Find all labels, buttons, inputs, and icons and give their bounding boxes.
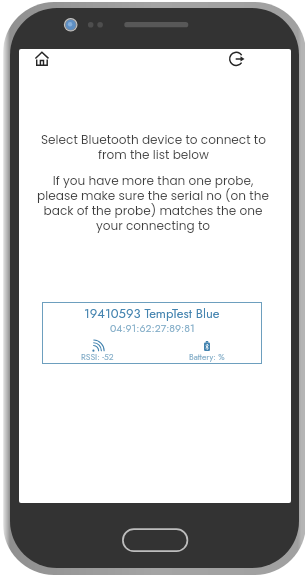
staticText: 19410593 TempTest Blue bbox=[84, 304, 220, 323]
staticText: RSSI: -52 bbox=[81, 351, 114, 363]
staticText: Select Bluetooth device to connect to fr… bbox=[41, 131, 266, 163]
button[interactable]: Home bbox=[27, 49, 57, 74]
button[interactable]: 19410593 TempTest Blue bbox=[42, 302, 262, 364]
staticText: 04:91:62:27:89:81 bbox=[110, 321, 195, 336]
button[interactable]: Log out bbox=[222, 49, 252, 75]
staticText: Battery: % bbox=[189, 351, 225, 363]
staticText: If you have more than one probe, please … bbox=[37, 172, 269, 234]
